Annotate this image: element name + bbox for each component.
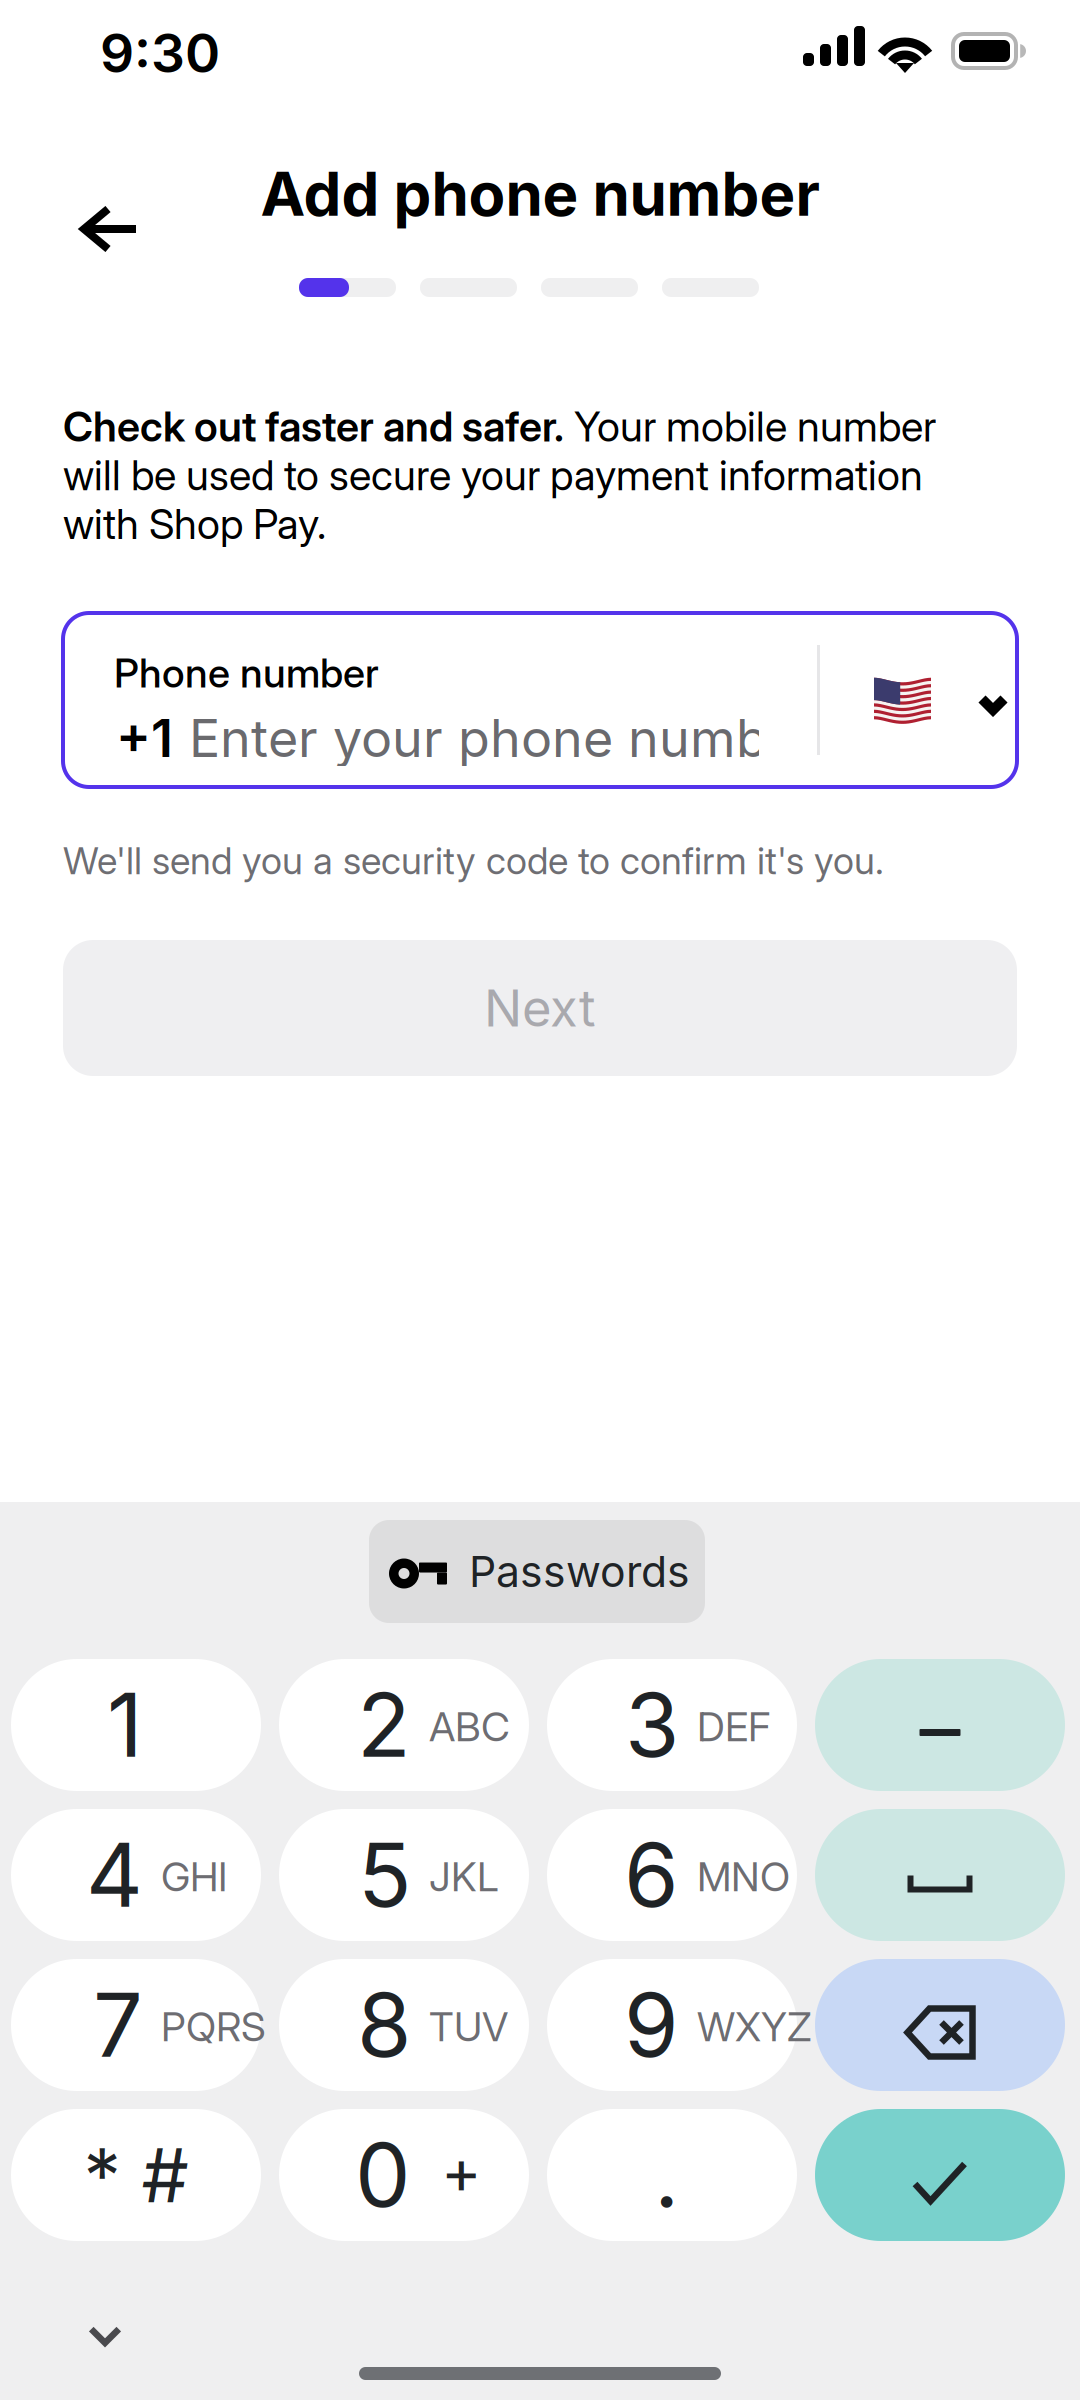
staticText: Phone number bbox=[114, 649, 379, 697]
button[interactable]: 5 bbox=[279, 1809, 529, 1941]
staticText: Next bbox=[484, 977, 596, 1039]
staticText: 4 bbox=[86, 1821, 143, 1928]
button[interactable]: Back bbox=[50, 179, 170, 279]
button[interactable]: 7 bbox=[11, 1959, 261, 2091]
staticText: ABC bbox=[429, 1703, 510, 1751]
button[interactable]: 3 bbox=[547, 1659, 797, 1791]
button[interactable]: Next bbox=[63, 940, 1017, 1076]
staticText: GHI bbox=[161, 1853, 227, 1901]
button[interactable]: Done bbox=[815, 2109, 1065, 2241]
button[interactable]: Dash bbox=[815, 1659, 1065, 1791]
staticText: * # bbox=[83, 2130, 188, 2220]
button[interactable]: 1 bbox=[11, 1659, 261, 1791]
staticText: 0 bbox=[355, 2121, 411, 2228]
staticText: TUV bbox=[429, 2003, 508, 2051]
staticText: . bbox=[654, 2121, 679, 2228]
button[interactable]: Dismiss keyboard bbox=[44, 2290, 166, 2382]
staticText: 2 bbox=[357, 1671, 411, 1778]
button[interactable]: Passwords bbox=[369, 1520, 705, 1623]
staticText: Enter your phone number bbox=[189, 706, 818, 769]
staticText: Add phone number bbox=[260, 158, 819, 230]
staticText: MNO bbox=[697, 1853, 790, 1901]
button[interactable]: 4 bbox=[11, 1809, 261, 1941]
staticText: 9:30 bbox=[100, 21, 220, 85]
staticText: Check out faster and safer. Your mobile … bbox=[63, 402, 936, 548]
staticText: WXYZ bbox=[697, 2003, 812, 2051]
staticText: 7 bbox=[93, 1971, 143, 2078]
button[interactable]: 0 bbox=[279, 2109, 529, 2241]
staticText: 6 bbox=[624, 1821, 679, 1928]
button[interactable]: * # bbox=[11, 2109, 261, 2241]
staticText: 1 bbox=[107, 1671, 143, 1778]
staticText: +1 bbox=[116, 706, 173, 769]
staticText: Passwords bbox=[469, 1546, 690, 1597]
staticText: JKL bbox=[429, 1853, 499, 1901]
staticText: DEF bbox=[697, 1703, 770, 1751]
button[interactable]: 2 bbox=[279, 1659, 529, 1791]
staticText: We'll send you a security code to confir… bbox=[63, 838, 884, 883]
button[interactable]: 8 bbox=[279, 1959, 529, 2091]
button[interactable]: 9 bbox=[547, 1959, 797, 2091]
staticText: + bbox=[441, 2134, 482, 2208]
staticText: 3 bbox=[625, 1671, 679, 1778]
staticText: 9 bbox=[624, 1971, 679, 2078]
button[interactable]: Select country bbox=[820, 613, 1017, 787]
button[interactable]: Delete bbox=[815, 1959, 1065, 2091]
button[interactable]: Space bbox=[815, 1809, 1065, 1941]
button[interactable]: . bbox=[547, 2109, 797, 2241]
staticText: 5 bbox=[358, 1821, 411, 1928]
button[interactable]: 6 bbox=[547, 1809, 797, 1941]
staticText: 8 bbox=[357, 1971, 411, 2078]
staticText: PQRS bbox=[161, 2003, 266, 2051]
